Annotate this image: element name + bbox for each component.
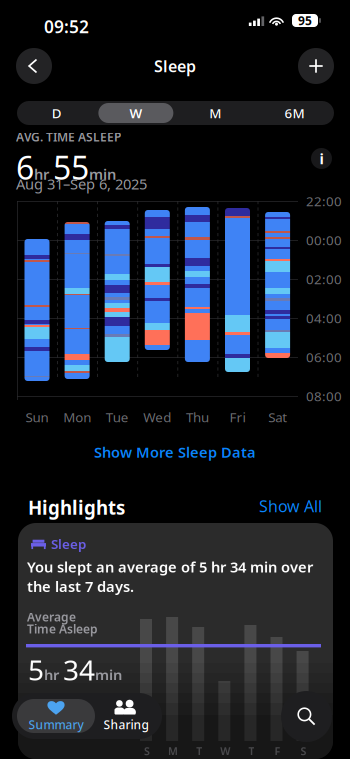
staticText: M	[209, 104, 221, 122]
staticText: 06:00	[306, 348, 342, 366]
button[interactable]: Add	[298, 48, 334, 84]
staticText: T	[248, 744, 254, 758]
staticText: 6M	[284, 104, 304, 122]
staticText: hr	[34, 164, 49, 184]
staticText: 5	[28, 651, 44, 688]
button[interactable]: W	[96, 101, 175, 125]
staticText: Sat	[268, 408, 287, 426]
staticText: min	[89, 164, 116, 184]
staticText: T	[196, 744, 202, 758]
staticText: Average	[27, 609, 76, 625]
staticText: Sharing	[103, 716, 148, 732]
staticText: 6	[16, 146, 34, 188]
staticText: D	[52, 104, 62, 122]
staticText: You slept an average of 5 hr 34 min over…	[27, 557, 313, 596]
staticText: 55	[53, 146, 89, 188]
staticText: 00:00	[306, 231, 342, 249]
staticText: Mon	[63, 408, 91, 426]
staticText: Fri	[230, 408, 246, 426]
staticText: Sleep	[154, 55, 196, 77]
staticText: 08:00	[306, 387, 342, 405]
staticText: Aug 31–Sep 6, 2025	[16, 174, 147, 193]
staticText: 02:00	[306, 270, 342, 288]
staticText: M	[168, 744, 178, 758]
button[interactable]: D	[17, 101, 96, 125]
staticText	[49, 164, 53, 184]
staticText: Sleep	[51, 535, 86, 553]
staticText: Time Asleep	[27, 621, 98, 637]
button[interactable]: 6M	[255, 101, 334, 125]
button[interactable]: Sharing	[95, 699, 157, 733]
staticText: AVG. TIME ASLEEP	[16, 129, 121, 145]
staticText: 04:00	[306, 309, 342, 327]
button[interactable]: Summary	[17, 699, 95, 733]
staticText: W	[220, 744, 230, 758]
staticText: Thu	[186, 408, 209, 426]
button[interactable]: Show More Sleep Data	[0, 441, 350, 463]
staticText: S	[144, 744, 150, 758]
button[interactable]: Information	[311, 148, 332, 169]
staticText: i	[319, 149, 323, 168]
staticText: Tue	[106, 408, 129, 426]
staticText: S	[301, 744, 307, 758]
staticText: Sun	[26, 408, 49, 426]
button[interactable]: Search	[281, 691, 332, 742]
staticText: W	[129, 104, 142, 122]
staticText: F	[274, 744, 280, 758]
staticText: 95	[298, 12, 312, 28]
button[interactable]: M	[175, 101, 255, 125]
staticText: 34	[63, 651, 95, 688]
staticText: Summary	[28, 716, 83, 732]
button[interactable]: Show All	[256, 497, 322, 515]
staticText: Show All	[259, 495, 322, 517]
staticText: 09:52	[44, 15, 89, 38]
staticText: Show More Sleep Data	[94, 442, 256, 462]
button[interactable]: Back	[16, 48, 52, 84]
staticText: Highlights	[28, 495, 125, 520]
staticText: hr	[44, 665, 59, 684]
staticText: 22:00	[306, 192, 342, 210]
staticText: min	[95, 665, 122, 684]
staticText: Wed	[143, 408, 171, 426]
